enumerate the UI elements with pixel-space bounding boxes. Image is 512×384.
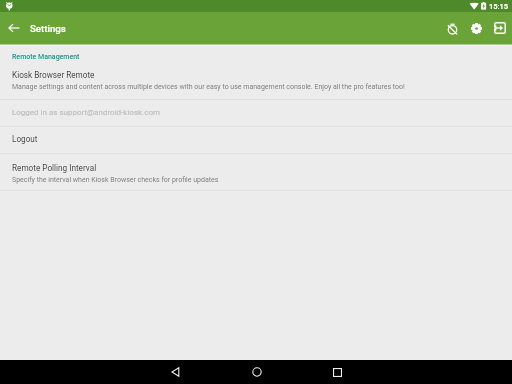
button[interactable]: Logged in as support@android-kiosk.com (0, 100, 512, 126)
button[interactable]: Back (135, 360, 216, 384)
staticText: 15:15 (489, 2, 509, 11)
button[interactable]: Settings (464, 16, 488, 40)
button[interactable]: Back (4, 18, 24, 38)
button[interactable]: Home (216, 360, 297, 384)
button[interactable]: Recents (297, 360, 378, 384)
staticText: Remote Management (12, 53, 80, 61)
button[interactable]: Remote Polling Interval (0, 154, 512, 190)
staticText: Logout (12, 134, 38, 144)
staticText: Kiosk Browser Remote (12, 70, 95, 80)
staticText: Settings (30, 23, 66, 34)
staticText: Remote Polling Interval (12, 163, 97, 173)
staticText: Logged in as support@android-kiosk.com (12, 108, 160, 117)
button[interactable]: Exit (488, 16, 512, 40)
button[interactable]: Remote Management (0, 52, 512, 99)
button[interactable]: Disable timer (440, 16, 464, 40)
button[interactable]: Logout (0, 127, 512, 153)
staticText: Specify the interval when Kiosk Browser … (12, 176, 219, 184)
staticText: Manage settings and content across multi… (12, 83, 405, 91)
